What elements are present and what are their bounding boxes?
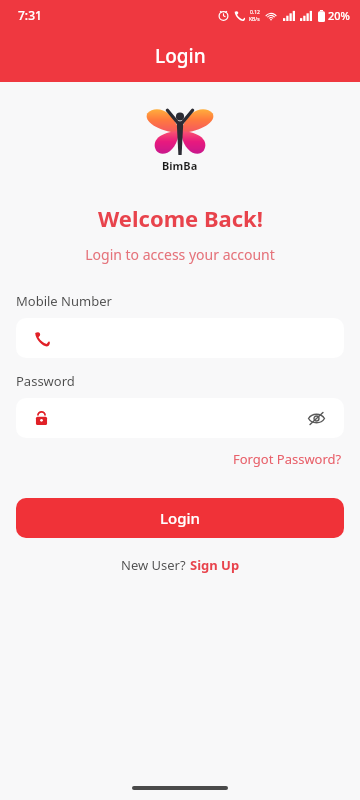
staticText: Login to access your account — [85, 245, 275, 264]
button[interactable]: Sign Up — [190, 556, 240, 574]
button[interactable]: Login — [16, 498, 344, 538]
staticText: Password — [16, 372, 75, 390]
button[interactable] — [16, 318, 344, 358]
staticText: KB/s — [249, 16, 260, 23]
staticText: Login — [160, 508, 200, 528]
button[interactable]: Forgot Password? — [231, 448, 344, 470]
staticText: Sign Up — [190, 556, 240, 574]
button[interactable]: Toggle password visibility — [302, 404, 330, 432]
staticText: 20% — [328, 8, 350, 23]
button[interactable]: Toggle password visibility — [16, 398, 344, 438]
staticText: Login — [155, 43, 206, 69]
staticText: Welcome Back! — [98, 203, 263, 233]
staticText: New User? — [121, 556, 190, 574]
staticText: 7:31 — [18, 7, 42, 23]
staticText: Forgot Password? — [233, 450, 342, 468]
staticText: Mobile Number — [16, 292, 112, 310]
staticText: 0.12 — [250, 9, 260, 16]
staticText: BimBa — [162, 158, 198, 173]
